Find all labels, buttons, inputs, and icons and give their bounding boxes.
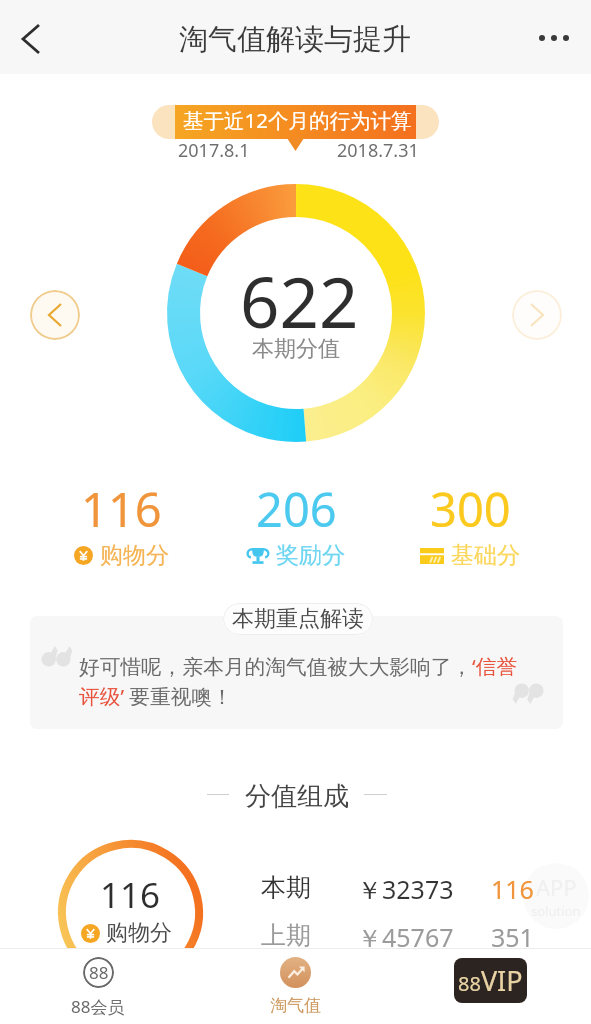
button[interactable]: Previous period — [30, 290, 80, 340]
staticText: 116 — [100, 871, 161, 919]
staticText: 622 — [240, 254, 359, 348]
staticText: 206 — [256, 477, 337, 541]
staticText: 奖励分 — [276, 541, 345, 570]
staticText: 本期重点解读 — [232, 605, 364, 633]
staticText: ￥45767 — [357, 920, 454, 954]
button[interactable]: 88 — [60, 957, 136, 1018]
button[interactable]: 88VIP — [454, 958, 527, 1003]
staticText: 116 — [81, 477, 162, 541]
staticText: 淘气值 — [270, 995, 321, 1016]
staticText: 300 — [430, 477, 511, 541]
staticText: 基于近12个月的行为计算 — [183, 106, 412, 134]
staticText: 分值组成 — [245, 780, 349, 813]
staticText: 基础分 — [451, 541, 520, 570]
staticText: 好可惜呢，亲本月的淘气值被大大影响了，‘信誉 评级’ 要重视噢！ — [79, 652, 549, 710]
button[interactable]: More options — [528, 12, 580, 64]
staticText: 351 — [491, 920, 534, 954]
button[interactable]: 淘气值 — [257, 957, 333, 1016]
staticText: 购物分 — [100, 541, 169, 570]
staticText: 购物分 — [106, 919, 172, 947]
staticText: solution — [531, 902, 581, 920]
staticText: 淘气值解读与提升 — [179, 21, 411, 58]
staticText: 2018.7.31 — [337, 138, 419, 163]
staticText: 116 — [491, 872, 534, 906]
button[interactable]: 206 — [211, 477, 381, 597]
button[interactable]: 300 — [385, 477, 555, 597]
staticText: APP — [536, 872, 577, 902]
button[interactable]: Next period — [512, 290, 562, 340]
button[interactable]: Back — [3, 11, 59, 67]
button[interactable]: 116 — [36, 477, 206, 597]
staticText: 88 — [89, 961, 109, 984]
button[interactable]: 本期重点解读 — [223, 603, 373, 635]
staticText: 本期 — [261, 872, 311, 903]
staticText: 本期分值 — [252, 335, 340, 363]
staticText: 2017.8.1 — [178, 138, 250, 163]
staticText: 上期 — [261, 920, 311, 951]
staticText: 88会员 — [71, 995, 125, 1018]
staticText: 88VIP — [458, 962, 523, 999]
staticText: ￥32373 — [357, 872, 454, 906]
